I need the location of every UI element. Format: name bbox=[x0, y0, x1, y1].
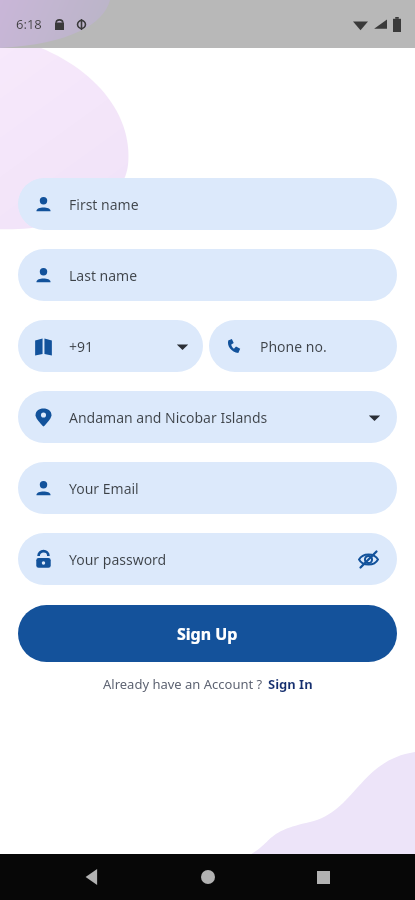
staticText: Andaman and Nicobar Islands bbox=[69, 408, 268, 427]
staticText: First name bbox=[69, 195, 139, 214]
staticText: Your Email bbox=[69, 479, 139, 498]
button[interactable]: Andaman and Nicobar Islands bbox=[18, 391, 397, 443]
staticText: +91 bbox=[69, 337, 94, 356]
staticText: Your password bbox=[69, 550, 167, 569]
button[interactable]: Recents bbox=[300, 854, 346, 900]
staticText: Already have an Account ? bbox=[103, 675, 263, 693]
button[interactable]: Show password bbox=[355, 546, 381, 572]
staticText: Last name bbox=[69, 266, 138, 285]
button[interactable]: +91 bbox=[18, 320, 203, 372]
staticText: Phone no. bbox=[260, 337, 327, 356]
button[interactable]: Phone no. bbox=[209, 320, 397, 372]
button[interactable]: Your password bbox=[18, 533, 397, 585]
button[interactable]: Home bbox=[185, 854, 231, 900]
button[interactable]: Sign In bbox=[268, 675, 313, 693]
button[interactable]: Last name bbox=[18, 249, 397, 301]
button[interactable]: First name bbox=[18, 178, 397, 230]
button[interactable]: Your Email bbox=[18, 462, 397, 514]
button[interactable]: Back bbox=[69, 854, 115, 900]
button[interactable]: Sign Up bbox=[18, 605, 397, 662]
staticText: 6:18 bbox=[16, 15, 42, 33]
staticText: Sign In bbox=[268, 675, 313, 693]
staticText: Sign Up bbox=[177, 623, 238, 645]
